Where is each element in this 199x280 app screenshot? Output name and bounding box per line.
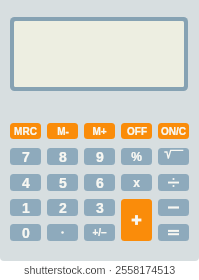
button[interactable]: OFF	[121, 123, 152, 139]
button[interactable]: 1	[10, 199, 41, 216]
staticText: x	[133, 176, 140, 189]
button[interactable]: minus	[158, 199, 189, 216]
button[interactable]: 4	[10, 174, 41, 191]
button[interactable]: 8	[47, 148, 78, 165]
staticText: shutterstock.com · 2558174513	[24, 264, 176, 276]
button[interactable]: 7	[10, 148, 41, 165]
button[interactable]: 9	[84, 148, 115, 165]
button[interactable]: decimal point	[47, 224, 78, 241]
button[interactable]: plus minus sign	[84, 224, 115, 241]
staticText: %	[131, 150, 142, 163]
button[interactable]: ON/C	[158, 123, 189, 139]
staticText: 7	[22, 149, 30, 165]
button[interactable]: M-	[47, 123, 78, 139]
staticText: 9	[96, 149, 104, 165]
button[interactable]: multiply	[121, 174, 152, 191]
staticText: 6	[96, 175, 104, 191]
staticText: 1	[22, 200, 30, 216]
button[interactable]: 5	[47, 174, 78, 191]
staticText: 2	[59, 200, 67, 216]
staticText: +/–	[92, 227, 107, 238]
button[interactable]: percent	[121, 148, 152, 165]
staticText: 4	[22, 175, 30, 191]
staticText: M+	[92, 126, 107, 137]
staticText: 0	[22, 225, 30, 241]
button[interactable]: equals	[158, 224, 189, 241]
button[interactable]: MRC	[10, 123, 41, 139]
staticText: OFF	[127, 126, 147, 137]
button[interactable]: square root	[158, 148, 189, 165]
button[interactable]: 2	[47, 199, 78, 216]
staticText: 5	[59, 175, 67, 191]
staticText: 8	[59, 149, 67, 165]
button[interactable]: 0	[10, 224, 41, 241]
staticText: ON/C	[161, 126, 186, 137]
button[interactable]: M+	[84, 123, 115, 139]
staticText: MRC	[14, 126, 37, 137]
button[interactable]: 3	[84, 199, 115, 216]
button[interactable]: plus	[121, 199, 152, 241]
staticText: M-	[57, 126, 69, 137]
staticText: 3	[96, 200, 104, 216]
button[interactable]: divide	[158, 174, 189, 191]
button[interactable]: 6	[84, 174, 115, 191]
